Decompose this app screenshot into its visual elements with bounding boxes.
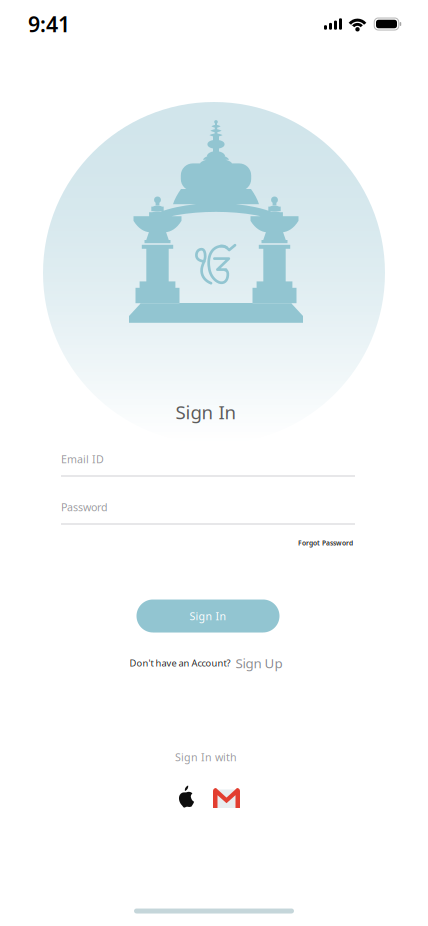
button[interactable]: Sign Up <box>235 654 282 672</box>
staticText: Sign In with <box>175 750 237 764</box>
staticText: Don't have an Account? <box>129 657 230 669</box>
staticText: Email ID <box>61 452 104 466</box>
staticText: Forgot Password <box>298 539 353 547</box>
staticText: Password <box>61 500 108 514</box>
button[interactable]: Sign In <box>136 599 279 632</box>
button[interactable]: Sign in with Apple <box>176 785 195 810</box>
staticText: Sign In <box>175 400 236 424</box>
button[interactable]: Forgot Password <box>263 537 353 549</box>
staticText: Sign In <box>189 609 226 623</box>
staticText: 9:41 <box>28 10 70 38</box>
staticText: Sign Up <box>235 654 282 672</box>
button[interactable]: Sign in with Google <box>213 788 240 808</box>
